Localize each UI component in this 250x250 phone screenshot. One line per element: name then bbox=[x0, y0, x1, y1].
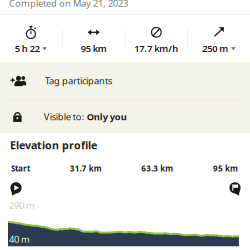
button[interactable]: 5 h 22 bbox=[0, 15, 62, 62]
staticText: Elevation profile bbox=[10, 138, 97, 152]
staticText: Only you bbox=[87, 110, 127, 123]
button[interactable]: 95 km bbox=[63, 15, 125, 62]
staticText: 40 m bbox=[9, 233, 30, 245]
staticText: Completed on May 21, 2023 bbox=[9, 0, 128, 9]
staticText: 63.3 km bbox=[141, 163, 173, 174]
staticText: 290 m bbox=[9, 199, 35, 212]
button[interactable]: Visible to: bbox=[0, 100, 250, 133]
staticText: 31.7 km bbox=[70, 163, 102, 174]
staticText: 5 h 22 bbox=[15, 42, 40, 55]
button[interactable]: Tag participants bbox=[0, 62, 250, 99]
staticText: 17.7 km/h bbox=[134, 42, 178, 55]
button[interactable]: 17.7 km/h bbox=[125, 15, 187, 62]
staticText: Visible to: bbox=[44, 110, 87, 123]
staticText: 95 km bbox=[213, 163, 238, 174]
staticText: 95 km bbox=[81, 42, 107, 55]
staticText: Start bbox=[11, 163, 30, 174]
staticText: 250 m bbox=[202, 42, 228, 55]
button[interactable]: 250 m bbox=[188, 15, 250, 62]
staticText: Tag participants bbox=[45, 75, 112, 87]
